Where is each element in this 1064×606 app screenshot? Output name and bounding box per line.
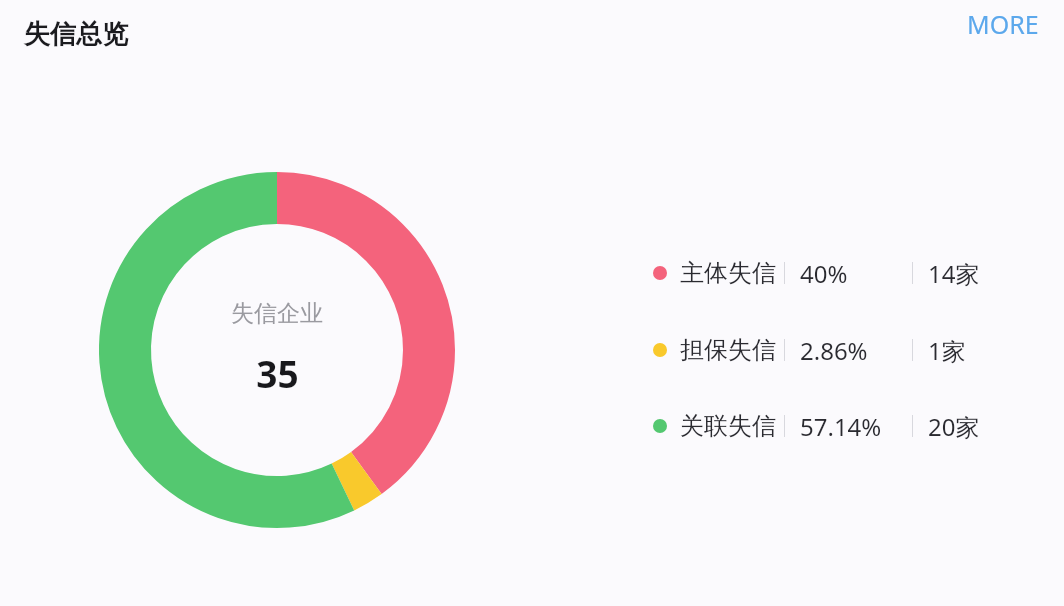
button[interactable]: MORE	[952, 1, 1054, 47]
button[interactable]: 关联失信	[646, 400, 1016, 452]
button[interactable]: 担保失信	[646, 324, 1016, 376]
staticText: 40%	[800, 257, 848, 290]
button[interactable]: 主体失信	[646, 247, 1016, 299]
staticText: 失信总览	[24, 18, 128, 51]
button[interactable]: 失信企业占比环形图	[99, 172, 455, 528]
staticText: MORE	[967, 7, 1039, 41]
staticText: 1家	[928, 334, 966, 367]
staticText: 2.86%	[800, 334, 868, 367]
staticText: 20家	[928, 410, 980, 443]
staticText: 14家	[928, 257, 980, 290]
staticText: 主体失信	[680, 258, 776, 288]
staticText: 失信企业	[231, 299, 323, 328]
staticText: 担保失信	[680, 335, 776, 365]
staticText: 57.14%	[800, 410, 882, 443]
staticText: 关联失信	[680, 411, 776, 441]
staticText: 35	[256, 348, 299, 398]
